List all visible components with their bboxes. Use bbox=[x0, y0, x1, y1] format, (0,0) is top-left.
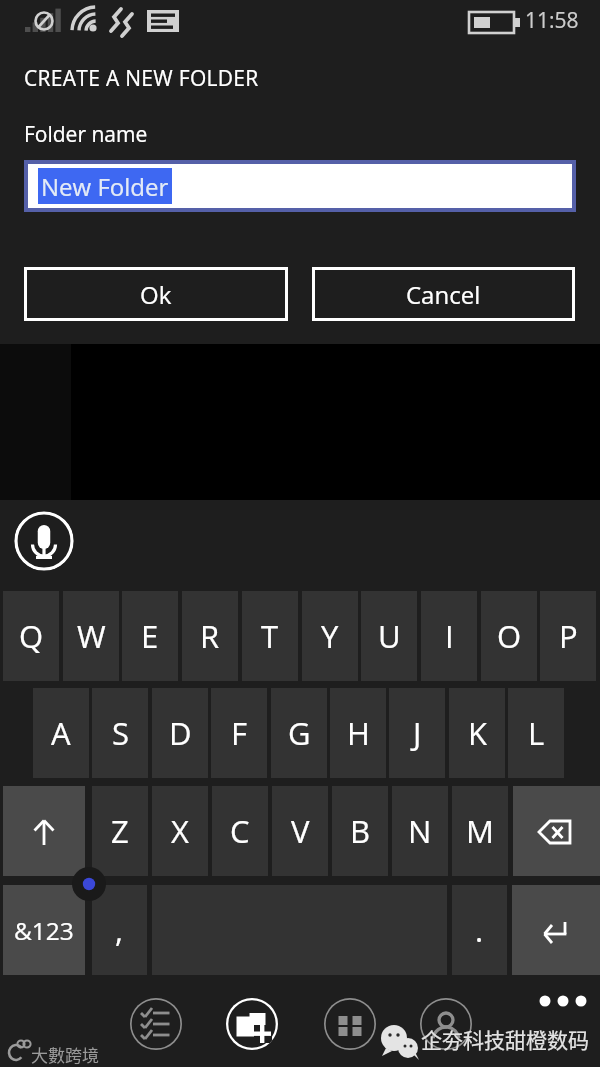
button[interactable]: V bbox=[272, 786, 328, 876]
staticText: , bbox=[115, 909, 124, 951]
button[interactable]: J bbox=[389, 688, 445, 778]
button[interactable]: C bbox=[212, 786, 268, 876]
staticText: U bbox=[378, 615, 401, 657]
button[interactable]: F bbox=[211, 688, 267, 778]
staticText: Ok bbox=[140, 278, 172, 311]
staticText: Cancel bbox=[406, 278, 481, 311]
button[interactable]: Backspace bbox=[513, 786, 600, 876]
staticText: A bbox=[51, 712, 71, 754]
staticText: 企夯科技甜橙数码 bbox=[421, 1024, 589, 1054]
button[interactable]: T bbox=[242, 591, 298, 681]
button[interactable]: New folder bbox=[226, 998, 278, 1050]
staticText: New Folder bbox=[41, 170, 169, 203]
staticText: L bbox=[528, 712, 545, 754]
button[interactable]: Q bbox=[3, 591, 59, 681]
staticText: X bbox=[171, 810, 189, 852]
staticText: K bbox=[468, 712, 487, 754]
button[interactable]: New Folder bbox=[28, 164, 572, 208]
staticText: W bbox=[77, 615, 106, 657]
button[interactable]: O bbox=[481, 591, 537, 681]
button[interactable]: Select bbox=[130, 998, 182, 1050]
staticText: C bbox=[230, 810, 250, 852]
staticText: &123 bbox=[14, 914, 74, 947]
button[interactable]: Shift bbox=[3, 786, 85, 876]
staticText: I bbox=[445, 615, 454, 657]
button[interactable]: P bbox=[540, 591, 596, 681]
button[interactable]: W bbox=[63, 591, 119, 681]
button[interactable]: Voice input bbox=[14, 511, 74, 571]
staticText: P bbox=[559, 615, 578, 657]
button[interactable]: &123 bbox=[3, 885, 85, 975]
staticText: Z bbox=[111, 810, 129, 852]
staticText: . bbox=[475, 909, 484, 951]
staticText: 11:58 bbox=[525, 6, 579, 35]
staticText: J bbox=[413, 712, 422, 754]
button[interactable]: M bbox=[452, 786, 508, 876]
button[interactable]: K bbox=[449, 688, 505, 778]
staticText: T bbox=[261, 615, 279, 657]
button[interactable]: H bbox=[330, 688, 386, 778]
staticText: R bbox=[200, 615, 220, 657]
button[interactable]: Apps bbox=[324, 998, 376, 1050]
staticText: D bbox=[169, 712, 192, 754]
button[interactable]: S bbox=[92, 688, 148, 778]
button[interactable]: R bbox=[182, 591, 238, 681]
button[interactable]: Ok bbox=[24, 267, 288, 321]
button[interactable]: L bbox=[508, 688, 564, 778]
button[interactable]: Y bbox=[302, 591, 358, 681]
staticText: M bbox=[466, 810, 494, 852]
button[interactable]: N bbox=[392, 786, 448, 876]
button[interactable]: I bbox=[421, 591, 477, 681]
staticText: B bbox=[350, 810, 371, 852]
staticText: 大數跨境 bbox=[31, 1042, 99, 1067]
staticText: H bbox=[347, 712, 370, 754]
button[interactable]: Account bbox=[420, 998, 472, 1050]
staticText: O bbox=[497, 615, 522, 657]
button[interactable]: B bbox=[332, 786, 388, 876]
button[interactable]: Cancel bbox=[312, 267, 575, 321]
button[interactable]: X bbox=[152, 786, 208, 876]
button[interactable]: A bbox=[33, 688, 89, 778]
staticText: E bbox=[141, 615, 159, 657]
button[interactable]: E bbox=[122, 591, 178, 681]
staticText: Folder name bbox=[24, 120, 148, 149]
staticText: G bbox=[288, 712, 311, 754]
button[interactable]: Enter bbox=[512, 885, 600, 975]
staticText: F bbox=[231, 712, 247, 754]
button[interactable]: U bbox=[361, 591, 417, 681]
staticText: S bbox=[112, 712, 129, 754]
staticText: Y bbox=[321, 615, 339, 657]
button[interactable]: . bbox=[452, 885, 507, 975]
staticText: V bbox=[291, 810, 310, 852]
button[interactable]: G bbox=[271, 688, 327, 778]
button[interactable]: D bbox=[152, 688, 208, 778]
button[interactable]: , bbox=[92, 885, 147, 975]
button[interactable]: More options bbox=[538, 990, 588, 1012]
staticText: CREATE A NEW FOLDER bbox=[24, 64, 259, 93]
staticText: Q bbox=[19, 615, 44, 657]
button[interactable]: Z bbox=[92, 786, 148, 876]
staticText: N bbox=[408, 810, 432, 852]
